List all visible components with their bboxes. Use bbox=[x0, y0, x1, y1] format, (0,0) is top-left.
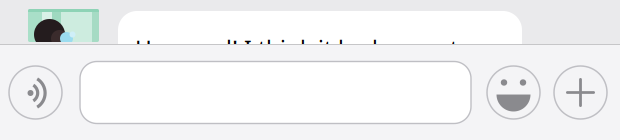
button[interactable]: Emoji bbox=[487, 66, 540, 119]
button[interactable]: Message bbox=[80, 61, 471, 123]
button[interactable]: Voice message bbox=[9, 66, 62, 119]
staticText: Hey, cool! I think it looks great bbox=[135, 34, 458, 64]
button[interactable]: Add attachment bbox=[554, 66, 607, 119]
